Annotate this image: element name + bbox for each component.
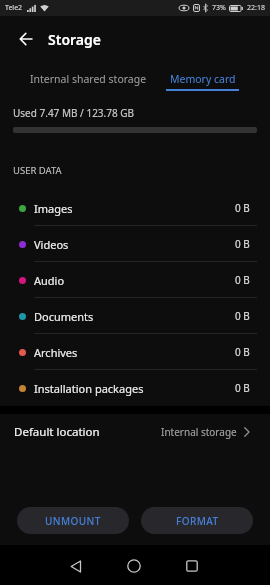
staticText: 0 B [235, 201, 250, 215]
staticText: FORMAT [176, 514, 219, 528]
button[interactable]: Archives [0, 334, 270, 370]
button[interactable]: Default location [0, 414, 270, 450]
button[interactable]: FORMAT [141, 507, 253, 534]
staticText: Internal storage [161, 425, 237, 439]
button[interactable]: Installation packages [0, 370, 270, 406]
staticText: 0 B [235, 273, 250, 287]
staticText: Audio [34, 273, 65, 288]
staticText: Documents [34, 309, 94, 324]
button[interactable] [121, 553, 147, 579]
staticText: Default location [14, 424, 100, 440]
button[interactable]: Audio [0, 262, 270, 298]
staticText: 0 B [235, 345, 250, 359]
button[interactable]: Videos [0, 226, 270, 262]
staticText: 0 B [235, 237, 250, 251]
staticText: Images [34, 201, 73, 216]
staticText: Tele2 [5, 3, 23, 13]
staticText: Storage [48, 30, 101, 49]
button[interactable]: Memory card [166, 72, 239, 91]
button[interactable]: UNMOUNT [17, 507, 129, 534]
staticText: Videos [34, 237, 69, 252]
staticText: Internal shared storage [30, 72, 147, 86]
button[interactable] [179, 553, 205, 579]
staticText: 73% [212, 3, 226, 13]
staticText: Memory card [170, 72, 236, 86]
staticText: 22:18 [247, 3, 265, 13]
staticText: 0 B [235, 309, 250, 323]
staticText: UNMOUNT [45, 514, 101, 528]
button[interactable]: Internal shared storage [30, 72, 147, 86]
button[interactable]: Documents [0, 298, 270, 334]
staticText: 0 B [235, 381, 250, 395]
staticText: USER DATA [13, 164, 62, 177]
staticText: Archives [34, 345, 78, 360]
button[interactable]: Images [0, 190, 270, 226]
staticText: Used 7.47 MB / 123.78 GB [13, 106, 135, 120]
staticText: Installation packages [34, 381, 144, 396]
button[interactable] [63, 553, 89, 579]
button[interactable] [14, 27, 38, 51]
